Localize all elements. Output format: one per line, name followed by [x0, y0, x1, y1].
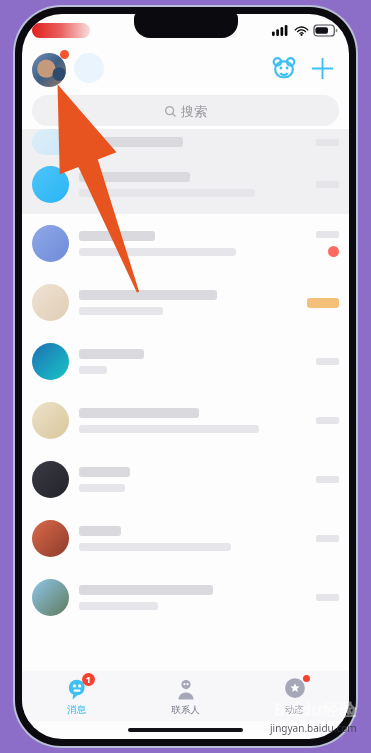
button[interactable]: 动态: [240, 671, 349, 721]
button[interactable]: QQ mascot: [269, 53, 299, 83]
button[interactable]: [22, 450, 349, 509]
button[interactable]: 联系人: [131, 671, 240, 721]
button[interactable]: 1: [22, 671, 131, 721]
staticText: 1: [86, 674, 91, 685]
staticText: jingyan.baidu.com: [270, 721, 357, 735]
button[interactable]: [22, 568, 349, 627]
button[interactable]: [22, 332, 349, 391]
button[interactable]: 搜索: [32, 95, 339, 126]
button[interactable]: [22, 214, 349, 273]
button[interactable]: [22, 273, 349, 332]
button[interactable]: Add: [307, 53, 337, 83]
button[interactable]: [22, 391, 349, 450]
button[interactable]: [22, 155, 349, 214]
button[interactable]: [22, 129, 349, 155]
button[interactable]: Profile: [32, 49, 70, 87]
button[interactable]: [22, 509, 349, 568]
staticText: 消息: [67, 704, 86, 716]
staticText: 动态: [285, 704, 304, 716]
staticText: Baidu经验: [274, 698, 357, 721]
staticText: 联系人: [171, 704, 200, 716]
staticText: 搜索: [181, 103, 207, 119]
